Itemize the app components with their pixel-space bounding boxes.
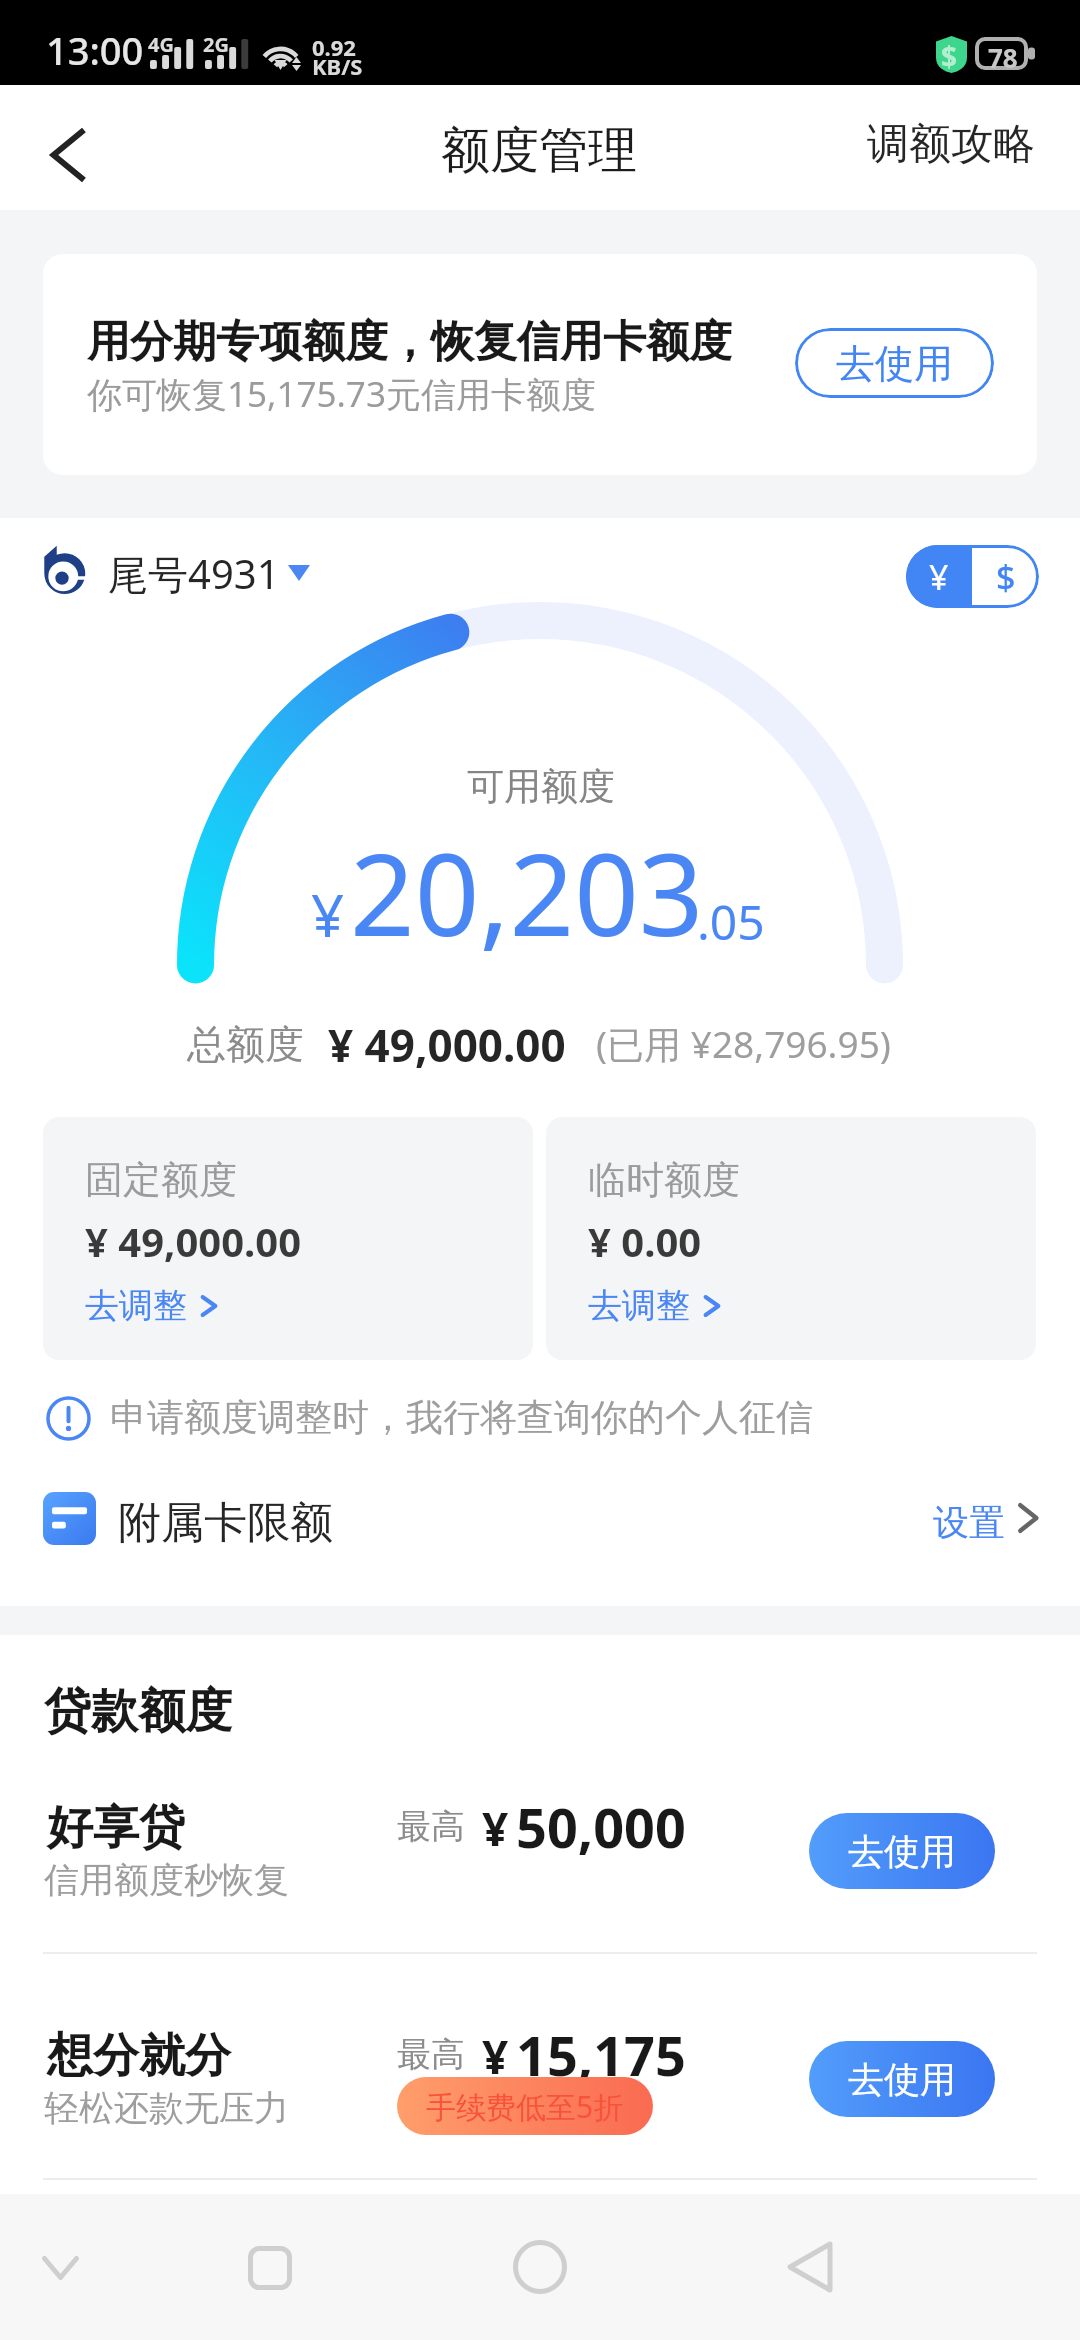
staticText: ¥ xyxy=(482,1797,509,1860)
staticText: 附属卡限额 xyxy=(118,1496,333,1550)
staticText: $ xyxy=(996,554,1016,600)
button[interactable]: Back xyxy=(15,100,120,210)
staticText: 信用额度秒恢复 xyxy=(44,1858,289,1902)
staticText: 设置 xyxy=(933,1500,1005,1545)
staticText: 贷款额度 xyxy=(44,1682,232,1741)
button[interactable]: Hide keyboard xyxy=(20,2228,100,2308)
staticText: 去调整 xyxy=(85,1284,187,1327)
staticText: 调额攻略 xyxy=(867,118,1035,171)
staticText: 去使用 xyxy=(836,339,953,388)
staticText: ¥ xyxy=(929,554,949,600)
staticText: ¥ 49,000.00 xyxy=(85,1214,302,1268)
staticText: 2G xyxy=(203,31,229,58)
staticText: 好享贷 xyxy=(47,1799,185,1857)
button[interactable]: 调额攻略 xyxy=(867,118,1035,171)
staticText: 13:00 xyxy=(46,24,144,76)
button[interactable]: 去使用 xyxy=(795,328,994,398)
staticText: ¥ 49,000.00 xyxy=(328,1015,566,1075)
button[interactable]: Back xyxy=(770,2227,850,2307)
staticText: ¥ xyxy=(482,2025,509,2088)
button[interactable]: Recent apps xyxy=(230,2228,310,2308)
button[interactable]: $ xyxy=(972,545,1039,608)
button[interactable]: 好享贷 xyxy=(0,1794,1080,1934)
button[interactable]: 去使用 xyxy=(809,1813,995,1889)
staticText: 手续费低至5折 xyxy=(426,2086,624,2127)
staticText: 50,000 xyxy=(516,1790,686,1864)
button[interactable]: 固定额度 xyxy=(43,1117,533,1360)
staticText: 临时额度 xyxy=(588,1156,740,1204)
button[interactable]: Home xyxy=(500,2227,580,2307)
button[interactable]: 想分就分 xyxy=(0,2022,1080,2177)
staticText: 尾号4931 xyxy=(108,546,280,601)
staticText: 用分期专项额度，恢复信用卡额度 xyxy=(87,315,732,369)
staticText: $ xyxy=(941,37,958,75)
staticText: 固定额度 xyxy=(85,1156,237,1204)
staticText: .05 xyxy=(697,889,765,954)
staticText: 可用额度 xyxy=(467,763,615,810)
staticText: 总额度 xyxy=(187,1020,304,1069)
staticText: (已用 ¥28,796.95) xyxy=(596,1018,891,1069)
staticText: 15,175 xyxy=(516,2018,686,2092)
staticText: 78 xyxy=(988,40,1018,75)
staticText: 轻松还款无压力 xyxy=(44,2086,289,2130)
button[interactable]: ¥ xyxy=(906,545,972,608)
button[interactable]: 用分期专项额度，恢复信用卡额度 xyxy=(43,254,1037,475)
staticText: 额度管理 xyxy=(441,120,637,182)
button[interactable]: 尾号4931 xyxy=(40,542,320,604)
staticText: 去调整 xyxy=(588,1284,690,1327)
button[interactable]: 临时额度 xyxy=(546,1117,1036,1360)
staticText: 0.92 xyxy=(312,32,356,62)
button[interactable]: 去调整 xyxy=(85,1284,219,1327)
staticText: 20,203 xyxy=(350,815,704,969)
staticText: 去使用 xyxy=(848,1829,956,1874)
button[interactable]: 去使用 xyxy=(809,2041,995,2117)
staticText: ¥ 0.00 xyxy=(588,1214,702,1268)
staticText: 申请额度调整时，我行将查询你的个人征信 xyxy=(110,1394,813,1441)
button[interactable]: 去调整 xyxy=(588,1284,722,1327)
staticText: 想分就分 xyxy=(47,2027,231,2085)
staticText: ¥ xyxy=(311,875,345,954)
staticText: 最高 xyxy=(397,1805,465,1848)
staticText: 你可恢复15,175.73元信用卡额度 xyxy=(87,370,596,418)
staticText: 去使用 xyxy=(848,2057,956,2102)
staticText: 4G xyxy=(148,31,174,58)
staticText: KB/S xyxy=(312,51,363,81)
button[interactable]: 附属卡限额 xyxy=(0,1478,1080,1558)
staticText: 最高 xyxy=(397,2033,465,2076)
